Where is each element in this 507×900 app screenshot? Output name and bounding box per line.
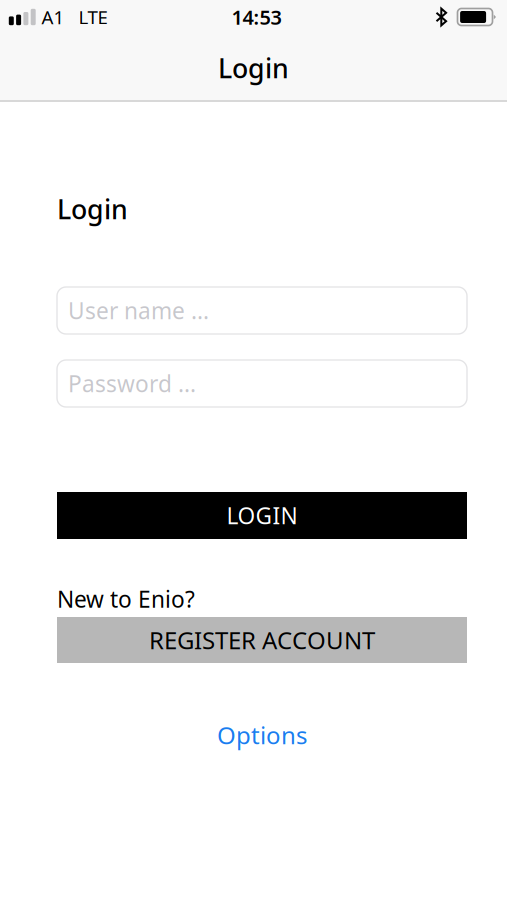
staticText: New to Enio? [57, 584, 195, 614]
staticText: Login [57, 191, 128, 227]
staticText: Options [217, 719, 307, 751]
staticText: LTE [78, 5, 107, 29]
button[interactable]: Password ... [57, 360, 467, 407]
button[interactable]: REGISTER ACCOUNT [57, 617, 467, 663]
staticText: Password ... [68, 368, 196, 398]
staticText: REGISTER ACCOUNT [149, 624, 375, 656]
staticText: LOGIN [226, 500, 297, 530]
staticText: User name ... [68, 295, 209, 325]
button[interactable]: LOGIN [57, 492, 467, 539]
button[interactable]: Options [203, 718, 321, 752]
staticText: 14:53 [231, 4, 281, 30]
staticText: A1 [41, 5, 64, 29]
staticText: Login [218, 50, 289, 86]
button[interactable]: User name ... [57, 287, 467, 334]
